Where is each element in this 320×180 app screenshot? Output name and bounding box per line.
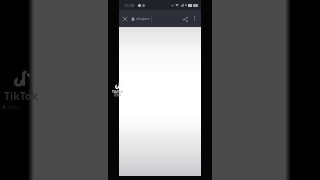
- staticText: TikTok: [4, 89, 39, 103]
- staticText: TikTok: [112, 89, 124, 94]
- button[interactable]: Close: [120, 14, 129, 23]
- button[interactable]: Share: [180, 14, 190, 24]
- staticText: @lyu: [7, 103, 20, 111]
- button[interactable]: More options: [190, 14, 199, 23]
- staticText: shopee: [136, 16, 150, 21]
- staticText: 10:08: [124, 3, 135, 8]
- staticText: @lyu: [114, 93, 122, 97]
